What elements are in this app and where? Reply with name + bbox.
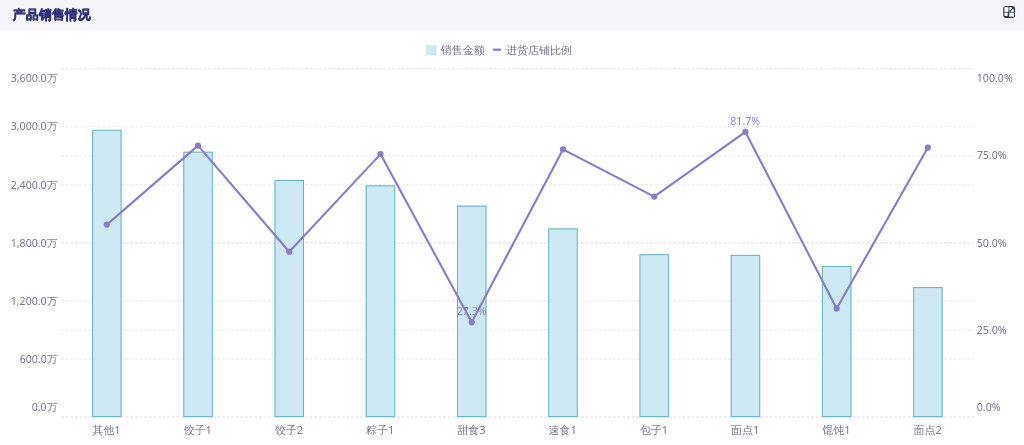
button[interactable]: Fullscreen <box>999 2 1019 21</box>
